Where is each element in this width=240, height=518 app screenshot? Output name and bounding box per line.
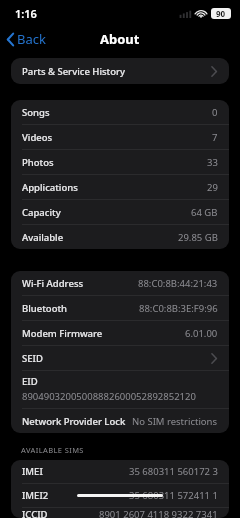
staticText: Songs <box>22 106 50 119</box>
staticText: 88:C0:8B:44:21:43 <box>138 277 218 290</box>
button[interactable]: SEID <box>11 346 229 370</box>
staticText: Capacity <box>22 206 61 219</box>
button[interactable]: ICCID <box>11 508 229 518</box>
staticText: IMEI2 <box>22 489 49 502</box>
staticText: 33 <box>207 156 218 169</box>
staticText: Back <box>17 30 46 48</box>
staticText: 6.01.00 <box>185 327 218 340</box>
staticText: Videos <box>22 131 53 144</box>
button[interactable]: Parts & Service History <box>11 58 229 84</box>
button[interactable]: Wi-Fi Address <box>11 271 229 295</box>
button[interactable]: IMEI <box>11 460 229 483</box>
staticText: EID <box>22 375 38 388</box>
staticText: 7 <box>212 131 218 144</box>
button[interactable]: Songs <box>11 100 229 124</box>
button[interactable]: Applications <box>11 175 229 199</box>
button[interactable]: IMEI2 <box>11 484 229 507</box>
staticText: 88:C0:8B:3E:F9:96 <box>139 302 218 315</box>
staticText: Bluetooth <box>22 302 68 315</box>
staticText: Wi-Fi Address <box>22 277 84 290</box>
staticText: 29.85 GB <box>178 231 218 244</box>
button[interactable]: Network Provider Lock <box>11 409 229 433</box>
button[interactable]: Capacity <box>11 200 229 224</box>
button[interactable]: Back <box>0 27 54 51</box>
staticText: 0 <box>212 106 218 119</box>
button[interactable]: EID <box>11 371 229 408</box>
staticText: 90 <box>216 8 226 19</box>
button[interactable]: Bluetooth <box>11 296 229 320</box>
staticText: 29 <box>207 181 218 194</box>
button[interactable]: Available <box>11 225 229 249</box>
staticText: Modem Firmware <box>22 327 103 340</box>
staticText: Applications <box>22 181 78 194</box>
staticText: No SIM restrictions <box>132 415 218 428</box>
staticText: 64 GB <box>191 206 218 219</box>
staticText: 8901 2607 4118 9322 7341 <box>99 508 218 518</box>
staticText: AVAILABLE SIMS <box>21 445 84 455</box>
staticText: Parts & Service History <box>22 65 126 78</box>
button[interactable]: Videos <box>11 125 229 149</box>
staticText: IMEI <box>22 465 43 478</box>
button[interactable]: Photos <box>11 150 229 174</box>
staticText: Network Provider Lock <box>22 415 126 428</box>
staticText: Available <box>22 231 64 244</box>
button[interactable]: Modem Firmware <box>11 321 229 345</box>
staticText: Photos <box>22 156 54 169</box>
staticText: ICCID <box>22 508 48 518</box>
staticText: 35 680311 560172 3 <box>129 465 218 478</box>
staticText: 89049032005008882600052892852120 <box>22 390 196 403</box>
staticText: 1:16 <box>15 6 37 21</box>
staticText: About <box>100 30 140 48</box>
staticText: 35 680311 572411 1 <box>129 489 218 502</box>
staticText: SEID <box>22 352 43 365</box>
